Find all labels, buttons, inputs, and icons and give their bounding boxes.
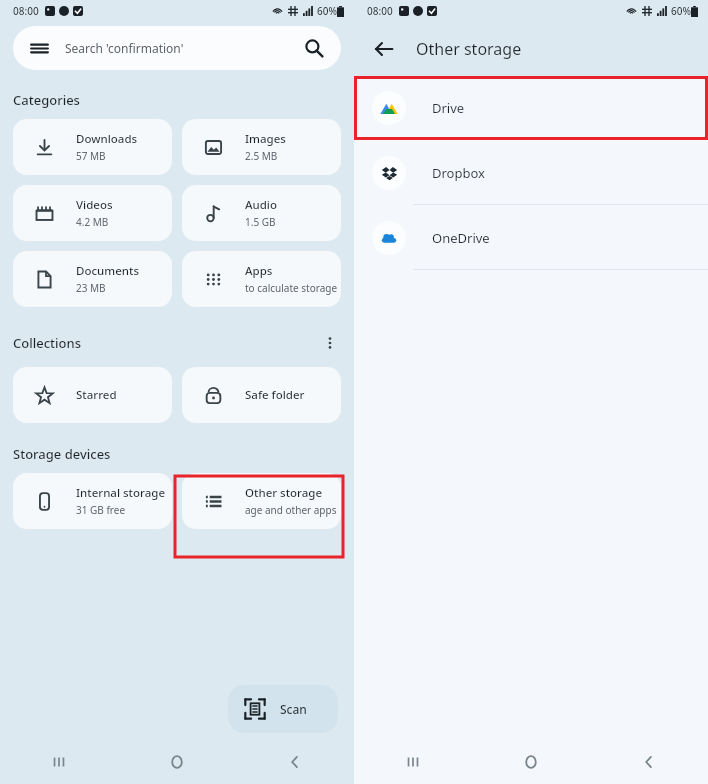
staticText: Storage devices <box>13 445 111 463</box>
staticText: 60% <box>317 4 337 18</box>
staticText: Safe folder <box>245 387 305 403</box>
staticText: 60% <box>671 4 691 18</box>
staticText: Documents <box>76 263 139 279</box>
staticText: Dropbox <box>432 164 485 182</box>
staticText: 1.5 GB <box>245 215 276 229</box>
staticText: Scan <box>280 701 307 717</box>
staticText: Audio <box>245 197 278 213</box>
staticText: Images <box>245 131 286 147</box>
staticText: 2.5 MB <box>245 149 278 163</box>
button[interactable]: Other storage <box>182 473 341 529</box>
staticText: Other storage <box>416 38 522 60</box>
staticText: Search 'confirmation' <box>65 40 184 56</box>
button[interactable]: Back <box>368 33 400 65</box>
button[interactable]: Starred <box>13 367 172 423</box>
staticText: 08:00 <box>367 4 393 18</box>
button[interactable]: Scan <box>228 685 338 733</box>
button[interactable]: Videos <box>13 185 172 241</box>
button[interactable]: Back <box>590 740 708 784</box>
staticText: Videos <box>76 197 113 213</box>
staticText: 57 MB <box>76 149 106 163</box>
button[interactable]: Recent apps <box>0 740 118 784</box>
staticText: Internal storage <box>76 485 165 501</box>
button[interactable]: Home <box>118 740 236 784</box>
staticText: Categories <box>13 91 80 109</box>
staticText: OneDrive <box>432 229 490 247</box>
button[interactable]: Internal storage <box>13 473 172 529</box>
button[interactable]: Images <box>182 119 341 175</box>
button[interactable]: Drive <box>354 76 708 140</box>
staticText: 23 MB <box>76 281 106 295</box>
staticText: 08:00 <box>13 4 39 18</box>
button[interactable]: Documents <box>13 251 172 307</box>
button[interactable]: Apps <box>182 251 341 307</box>
staticText: Other storage <box>245 485 323 501</box>
button[interactable]: OneDrive <box>354 205 708 270</box>
button[interactable]: Recent apps <box>354 740 472 784</box>
staticText: Collections <box>13 334 81 352</box>
button[interactable]: Back <box>236 740 354 784</box>
button[interactable]: Safe folder <box>182 367 341 423</box>
staticText: to calculate storage <box>245 281 338 295</box>
staticText: 31 GB free <box>76 503 126 517</box>
button[interactable]: Dropbox <box>354 140 708 205</box>
staticText: Drive <box>432 99 465 117</box>
staticText: age and other apps <box>245 503 337 517</box>
button[interactable]: Search 'confirmation' <box>13 26 341 70</box>
button[interactable]: Downloads <box>13 119 172 175</box>
button[interactable]: More options <box>316 329 344 357</box>
staticText: Starred <box>76 387 117 403</box>
button[interactable]: Audio <box>182 185 341 241</box>
staticText: Downloads <box>76 131 138 147</box>
button[interactable]: Home <box>472 740 590 784</box>
staticText: Apps <box>245 263 273 279</box>
staticText: 4.2 MB <box>76 215 109 229</box>
